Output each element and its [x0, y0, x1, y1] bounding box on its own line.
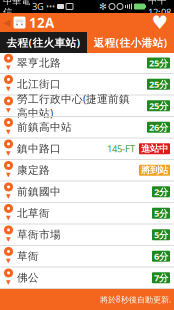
- button[interactable]: 返程(往小港站): [87, 32, 174, 53]
- staticText: 前鎮高中站: [17, 121, 72, 134]
- staticText: 去程(往火車站): [6, 35, 80, 50]
- staticText: 25分: [149, 57, 168, 69]
- staticText: 鎮中路口: [17, 142, 61, 155]
- staticText: ▾: [6, 83, 11, 94]
- staticText: ◀: [3, 17, 10, 28]
- staticText: 前鎮國中: [17, 185, 61, 198]
- staticText: 草衙: [17, 250, 39, 263]
- staticText: 北草衙: [17, 207, 50, 220]
- staticText: ▾: [6, 276, 11, 287]
- staticText: 25分: [149, 100, 168, 112]
- button[interactable]: ▾: [0, 74, 174, 95]
- staticText: 返程(往小港站): [93, 35, 167, 50]
- staticText: 26分: [149, 121, 168, 133]
- button[interactable]: 去程(往火車站): [0, 32, 87, 53]
- staticText: ▾: [6, 190, 11, 201]
- staticText: 6分: [154, 250, 168, 262]
- staticText: 12A: [29, 14, 54, 31]
- staticText: ✻: [99, 1, 107, 12]
- staticText: 將於8秒後自動更新.: [100, 294, 171, 305]
- staticText: ▾: [6, 212, 11, 223]
- button[interactable]: ▾: [0, 267, 174, 289]
- staticText: 7分: [154, 272, 168, 284]
- staticText: 勞工行政中心(捷運前鎮高中站): [17, 92, 130, 120]
- staticText: 康定路: [17, 164, 50, 177]
- staticText: 中華電信: [3, 0, 30, 18]
- staticText: 3G: [32, 0, 44, 13]
- staticText: ▾: [6, 126, 11, 137]
- button[interactable]: ▾: [0, 160, 174, 181]
- button[interactable]: ▾: [0, 117, 174, 138]
- staticText: 將到站: [141, 164, 168, 176]
- button[interactable]: ▾: [0, 181, 174, 203]
- staticText: 25分: [149, 78, 168, 90]
- button[interactable]: ▾: [0, 138, 174, 160]
- button[interactable]: ▾: [0, 224, 174, 246]
- staticText: ▾: [6, 255, 11, 266]
- button[interactable]: ▾: [0, 203, 174, 224]
- button[interactable]: Add to favorites: [149, 13, 171, 32]
- staticText: 5分: [154, 207, 168, 219]
- staticText: ♥: [151, 12, 168, 33]
- staticText: ▾: [6, 147, 11, 158]
- button[interactable]: ▾: [0, 246, 174, 267]
- button[interactable]: ▾: [0, 95, 174, 117]
- staticText: 145-FT: [107, 143, 135, 155]
- staticText: 進站中: [141, 143, 168, 154]
- staticText: 北江街口: [17, 78, 61, 91]
- staticText: 佛公: [17, 271, 39, 284]
- staticText: ▾: [6, 104, 11, 115]
- staticText: 草衙市場: [17, 228, 61, 241]
- staticText: 5分: [154, 229, 168, 241]
- staticText: ▾: [6, 233, 11, 244]
- staticText: 中午12:08: [148, 0, 171, 18]
- button[interactable]: ▾: [0, 53, 174, 74]
- staticText: ▾: [6, 169, 11, 180]
- button[interactable]: Back to route 12A: [0, 12, 54, 33]
- staticText: 2分: [154, 186, 168, 198]
- staticText: •••: [46, 1, 55, 12]
- staticText: 翠亨北路: [17, 56, 61, 69]
- staticText: ▾: [6, 62, 11, 72]
